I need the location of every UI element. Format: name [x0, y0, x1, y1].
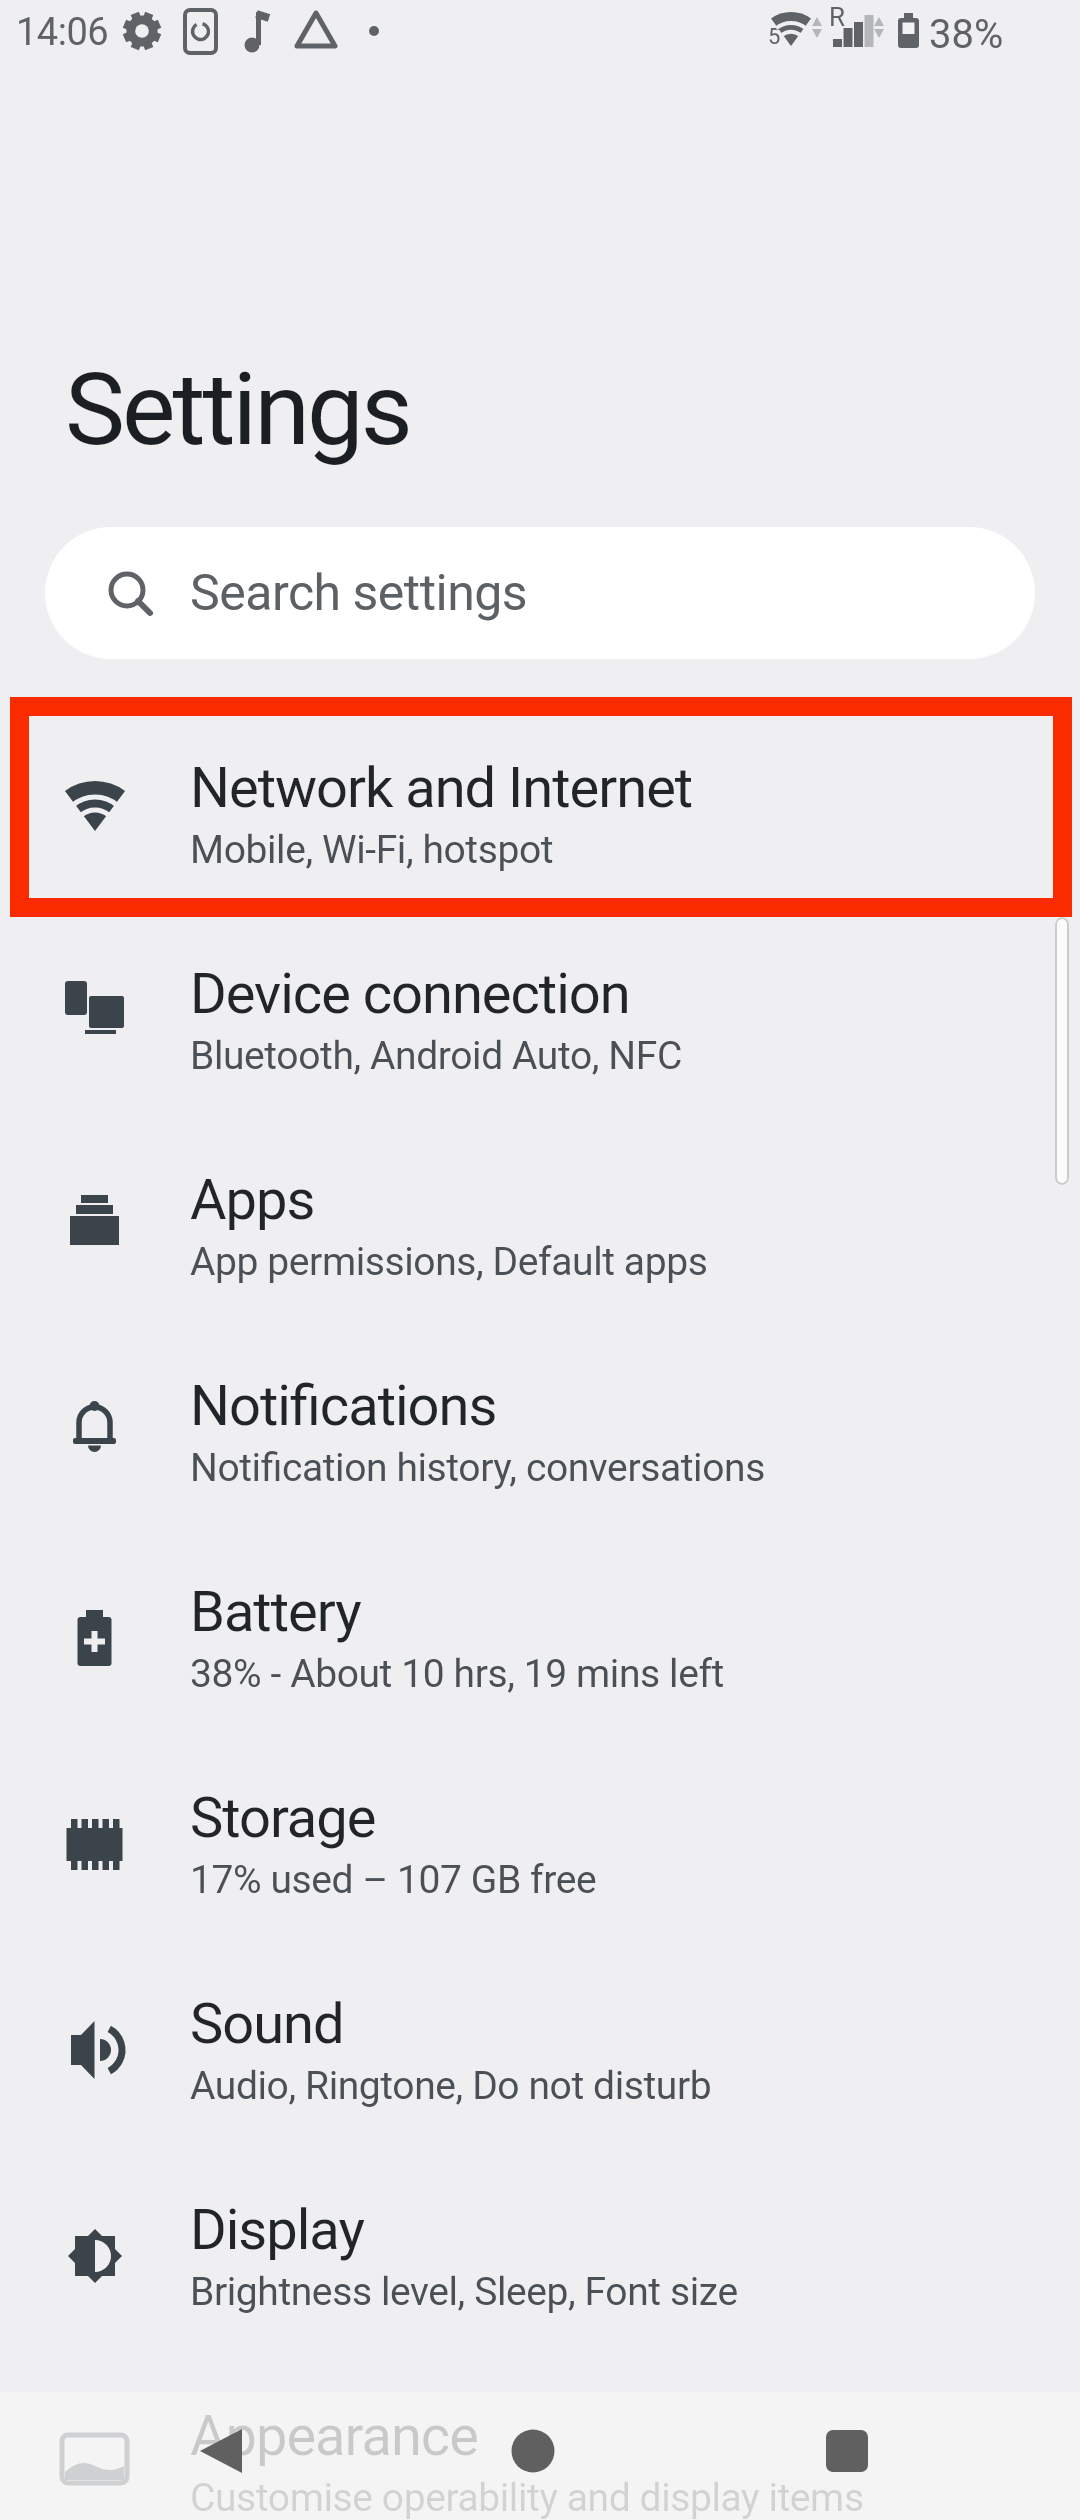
- staticText: Display: [190, 2197, 364, 2263]
- staticText: Settings: [65, 350, 410, 468]
- button[interactable]: Storage: [0, 1741, 1080, 1947]
- staticText: Mobile, Wi-Fi, hotspot: [190, 827, 554, 873]
- staticText: Customise operability and display items: [190, 2475, 864, 2520]
- staticText: Brightness level, Sleep, Font size: [190, 2269, 738, 2315]
- staticText: 5: [768, 24, 781, 50]
- staticText: Audio, Ringtone, Do not disturb: [190, 2063, 712, 2109]
- staticText: Battery: [190, 1579, 361, 1645]
- staticText: Notifications: [190, 1373, 497, 1439]
- staticText: Appearance: [190, 2403, 478, 2469]
- staticText: Apps: [190, 1167, 315, 1233]
- staticText: R: [829, 2, 846, 32]
- staticText: Notification history, conversations: [190, 1445, 765, 1491]
- button[interactable]: Sound: [0, 1947, 1080, 2153]
- button[interactable]: Network and Internet: [0, 711, 1080, 917]
- staticText: App permissions, Default apps: [190, 1239, 708, 1285]
- staticText: Search settings: [190, 564, 528, 623]
- button[interactable]: Battery: [0, 1535, 1080, 1741]
- button[interactable]: [506, 2416, 560, 2470]
- button[interactable]: Search settings: [45, 527, 1035, 659]
- staticText: Sound: [190, 1991, 344, 2057]
- staticText: 17% used – 107 GB free: [190, 1857, 597, 1903]
- button[interactable]: Device connection: [0, 917, 1080, 1123]
- button[interactable]: Appearance: [0, 2359, 1080, 2520]
- button[interactable]: Apps: [0, 1123, 1080, 1329]
- staticText: Storage: [190, 1785, 376, 1851]
- staticText: 38%: [929, 11, 1004, 58]
- button[interactable]: [818, 2422, 876, 2480]
- staticText: Device connection: [190, 961, 630, 1027]
- button[interactable]: Display: [0, 2153, 1080, 2359]
- staticText: 38% - About 10 hrs, 19 mins left: [190, 1651, 724, 1697]
- staticText: 14:06: [16, 10, 109, 55]
- staticText: Network and Internet: [190, 755, 693, 821]
- button[interactable]: [190, 2429, 250, 2473]
- button[interactable]: Notifications: [0, 1329, 1080, 1535]
- staticText: Bluetooth, Android Auto, NFC: [190, 1033, 682, 1079]
